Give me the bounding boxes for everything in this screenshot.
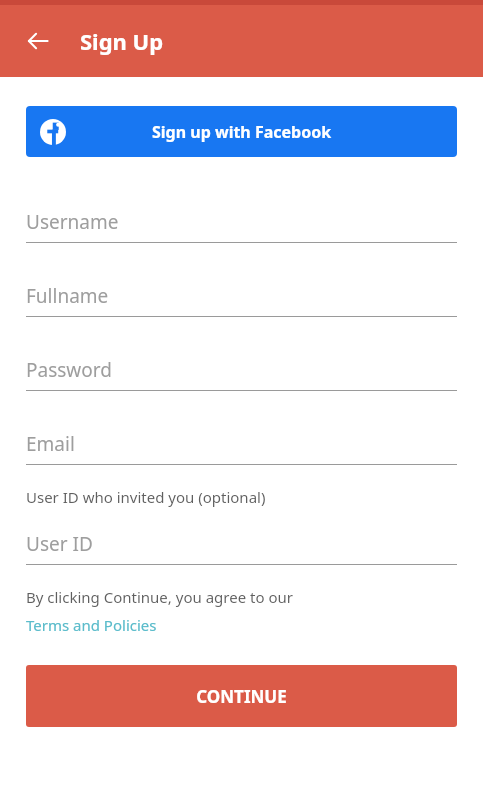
staticText: Fullname [26, 283, 109, 309]
button[interactable]: Sign up with Facebook [26, 106, 457, 157]
button[interactable]: User ID [26, 524, 457, 565]
button[interactable]: Password [26, 350, 457, 391]
staticText: By clicking Continue, you agree to our [26, 587, 293, 607]
staticText: Email [26, 431, 75, 457]
staticText: User ID [26, 531, 93, 557]
staticText: Sign up with Facebook [152, 121, 332, 143]
staticText: Username [26, 209, 119, 235]
button[interactable]: CONTINUE [26, 665, 457, 727]
button[interactable]: Back [14, 17, 62, 65]
button[interactable]: Username [26, 202, 457, 243]
staticText: CONTINUE [196, 685, 287, 708]
button[interactable]: Email [26, 424, 457, 465]
button[interactable]: Fullname [26, 276, 457, 317]
staticText: User ID who invited you (optional) [26, 487, 266, 507]
staticText: Terms and Policies [26, 615, 157, 635]
button[interactable]: Terms and Policies [26, 615, 157, 635]
staticText: Sign Up [80, 26, 164, 56]
staticText: Password [26, 357, 112, 383]
